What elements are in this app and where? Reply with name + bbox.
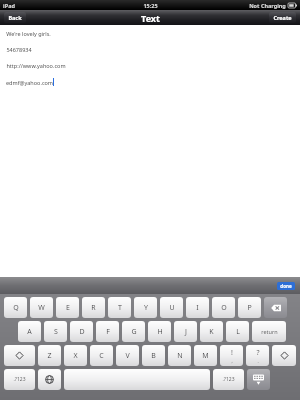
staticText: Text: [141, 12, 160, 24]
button[interactable]: !: [220, 345, 243, 366]
button[interactable]: T: [108, 297, 131, 318]
staticText: F: [106, 327, 110, 337]
staticText: I: [196, 303, 199, 313]
button[interactable]: Q: [4, 297, 27, 318]
button[interactable]: P: [238, 297, 261, 318]
button[interactable]: Back: [4, 12, 26, 23]
staticText: G: [131, 327, 137, 337]
button[interactable]: R: [82, 297, 105, 318]
staticText: ?: [256, 348, 260, 358]
staticText: [136, 375, 138, 385]
staticText: 15:25: [143, 2, 158, 9]
staticText: iPad: [3, 2, 15, 9]
button[interactable]: V: [116, 345, 139, 366]
button[interactable]: U: [160, 297, 183, 318]
button[interactable]: C: [90, 345, 113, 366]
button[interactable]: K: [200, 321, 223, 342]
button[interactable]: Shift: [4, 345, 35, 366]
button[interactable]: H: [148, 321, 171, 342]
button[interactable]: Z: [38, 345, 61, 366]
staticText: A: [27, 327, 32, 337]
button[interactable]: done: [277, 282, 295, 290]
button[interactable]: Hide keyboard: [247, 369, 270, 390]
staticText: .?123: [13, 376, 26, 383]
staticText: .?123: [222, 376, 235, 383]
button[interactable]: B: [142, 345, 165, 366]
staticText: T: [118, 303, 122, 313]
staticText: 54678934: [6, 46, 32, 53]
button[interactable]: Delete: [264, 297, 287, 318]
staticText: We're lovely girls.: [6, 30, 51, 37]
button[interactable]: Shift: [272, 345, 296, 366]
button[interactable]: ?: [246, 345, 269, 366]
button[interactable]: X: [64, 345, 87, 366]
staticText: O: [221, 303, 227, 313]
staticText: K: [209, 327, 214, 337]
staticText: !: [231, 348, 233, 358]
button[interactable]: O: [212, 297, 235, 318]
staticText: Not Charging: [249, 2, 286, 9]
staticText: B: [151, 351, 156, 361]
staticText: return: [261, 328, 278, 335]
staticText: P: [247, 303, 252, 313]
staticText: Y: [144, 303, 148, 313]
staticText: E: [66, 303, 70, 313]
staticText: L: [236, 327, 240, 337]
button[interactable]: Create: [269, 12, 296, 23]
staticText: R: [91, 303, 96, 313]
staticText: Q: [13, 303, 19, 313]
button[interactable]: Next keyboard: [38, 369, 61, 390]
staticText: C: [99, 351, 104, 361]
staticText: V: [125, 351, 130, 361]
button[interactable]: Y: [134, 297, 157, 318]
staticText: X: [73, 351, 78, 361]
button[interactable]: W: [30, 297, 53, 318]
staticText: H: [157, 327, 163, 337]
staticText: D: [79, 327, 85, 337]
button[interactable]: A: [18, 321, 41, 342]
button[interactable]: L: [226, 321, 249, 342]
button[interactable]: G: [122, 321, 145, 342]
staticText: M: [202, 351, 209, 361]
button[interactable]: J: [174, 321, 197, 342]
staticText: Create: [273, 14, 292, 21]
button[interactable]: [64, 369, 210, 390]
staticText: http://www.yahoo.com: [6, 62, 66, 69]
staticText: Z: [47, 351, 52, 361]
button[interactable]: E: [56, 297, 79, 318]
button[interactable]: S: [44, 321, 67, 342]
staticText: edmf@yahoo.com: [6, 79, 53, 86]
button[interactable]: .?123: [213, 369, 244, 390]
button[interactable]: F: [96, 321, 119, 342]
button[interactable]: D: [70, 321, 93, 342]
button[interactable]: M: [194, 345, 217, 366]
staticText: ,: [231, 358, 233, 364]
staticText: U: [169, 303, 175, 313]
staticText: done: [280, 283, 292, 289]
staticText: .: [257, 358, 259, 364]
button[interactable]: N: [168, 345, 191, 366]
staticText: S: [54, 327, 58, 337]
button[interactable]: I: [186, 297, 209, 318]
staticText: W: [38, 303, 45, 313]
staticText: J: [185, 327, 187, 337]
button[interactable]: .?123: [4, 369, 35, 390]
staticText: N: [177, 351, 183, 361]
button[interactable]: return: [252, 321, 286, 342]
staticText: Back: [8, 14, 22, 21]
